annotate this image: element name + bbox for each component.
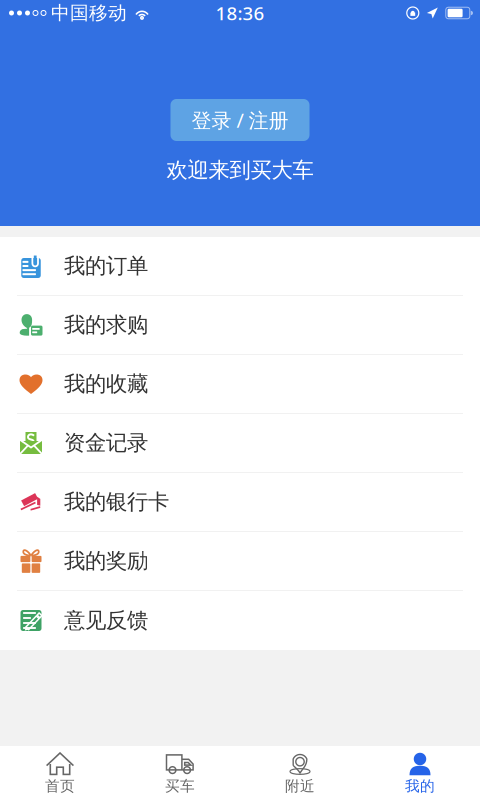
staticText: 我的 <box>405 777 435 795</box>
staticText: 买车 <box>165 777 195 795</box>
staticText: 资金记录 <box>64 430 148 456</box>
button[interactable]: 买车 <box>120 746 240 800</box>
staticText: 欢迎来到买大车 <box>166 157 313 183</box>
staticText: 登录 / 注册 <box>191 107 288 133</box>
button[interactable]: 我的奖励 <box>0 532 480 591</box>
button[interactable]: 我的银行卡 <box>0 473 480 532</box>
button[interactable]: 我的求购 <box>0 296 480 355</box>
staticText: 18:36 <box>215 1 264 25</box>
button[interactable]: 登录 / 注册 <box>170 99 309 141</box>
staticText: 我的银行卡 <box>64 489 169 515</box>
button[interactable]: 附近 <box>240 746 360 800</box>
staticText: 我的收藏 <box>64 371 148 397</box>
button[interactable]: 意见反馈 <box>0 591 480 650</box>
button[interactable]: 我的 <box>360 746 480 800</box>
button[interactable]: 资金记录 <box>0 414 480 473</box>
button[interactable]: 我的收藏 <box>0 355 480 414</box>
staticText: 我的奖励 <box>64 548 148 574</box>
staticText: 我的求购 <box>64 312 148 338</box>
staticText: 意见反馈 <box>64 607 148 634</box>
staticText: 附近 <box>285 777 315 795</box>
staticText: 我的订单 <box>64 253 148 279</box>
staticText: 中国移动 <box>51 1 127 24</box>
button[interactable]: 我的订单 <box>0 237 480 296</box>
staticText: 首页 <box>45 777 75 795</box>
button[interactable]: 首页 <box>0 746 120 800</box>
